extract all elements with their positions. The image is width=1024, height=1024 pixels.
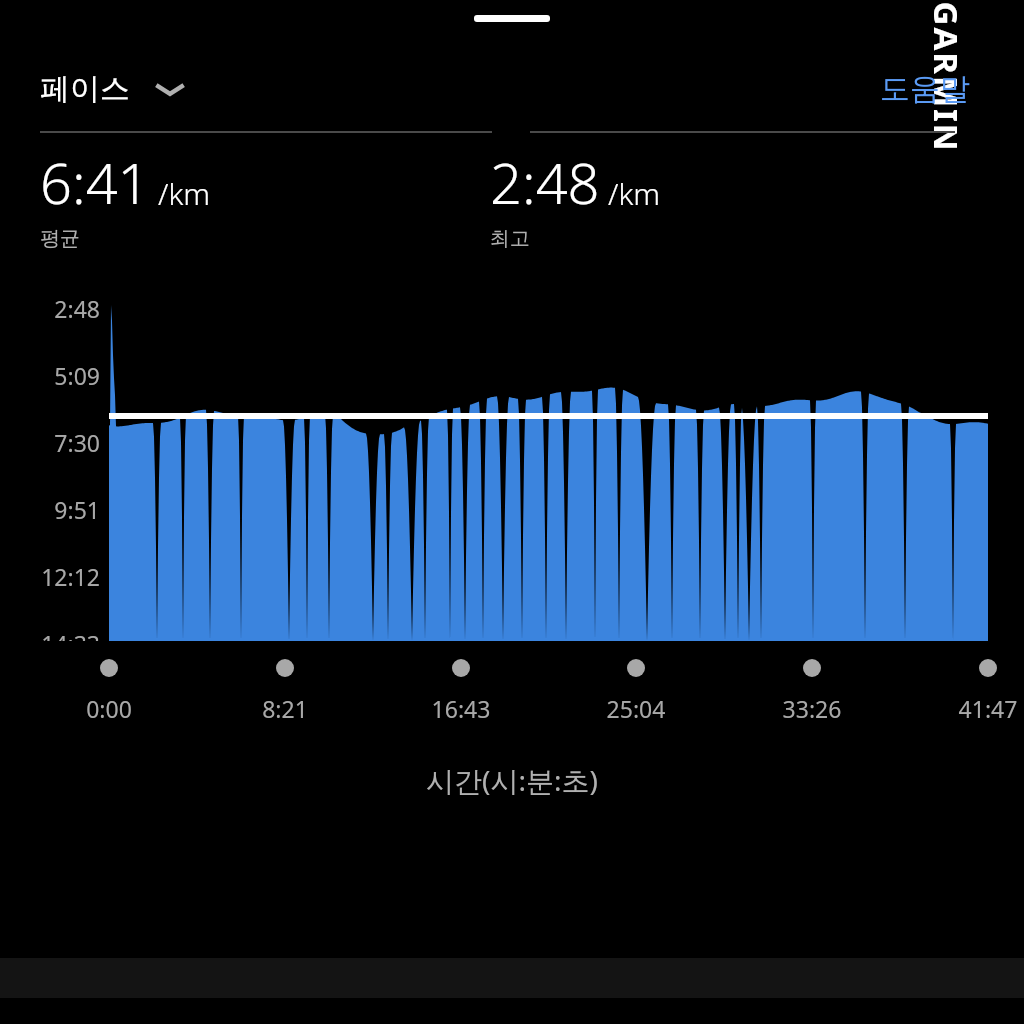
- staticText: 평균: [40, 226, 80, 251]
- staticText: 0:00: [64, 693, 154, 723]
- staticText: 5:09: [54, 360, 100, 391]
- button[interactable]: 페이스: [40, 70, 188, 108]
- staticText: 6:41: [40, 144, 150, 220]
- staticText: 14:33: [41, 628, 100, 641]
- staticText: GARMIN: [923, 1, 968, 153]
- staticText: 16:43: [416, 693, 506, 723]
- staticText: 페이스: [40, 70, 130, 108]
- staticText: 도움말: [880, 70, 970, 108]
- staticText: 2:48: [54, 293, 100, 324]
- staticText: 최고: [490, 226, 530, 251]
- staticText: 7:30: [54, 427, 100, 458]
- other: Change metric: [152, 77, 188, 101]
- staticText: 12:12: [41, 561, 100, 592]
- staticText: 2:48: [490, 144, 600, 220]
- staticText: 8:21: [240, 693, 330, 723]
- staticText: 9:51: [54, 494, 100, 525]
- staticText: /km: [608, 173, 661, 214]
- staticText: 33:26: [767, 693, 857, 723]
- staticText: 41:47: [943, 693, 1024, 723]
- staticText: 시간(시:분:초): [0, 761, 1024, 799]
- staticText: /km: [158, 173, 211, 214]
- staticText: 25:04: [591, 693, 681, 723]
- button[interactable]: 도움말: [876, 70, 974, 108]
